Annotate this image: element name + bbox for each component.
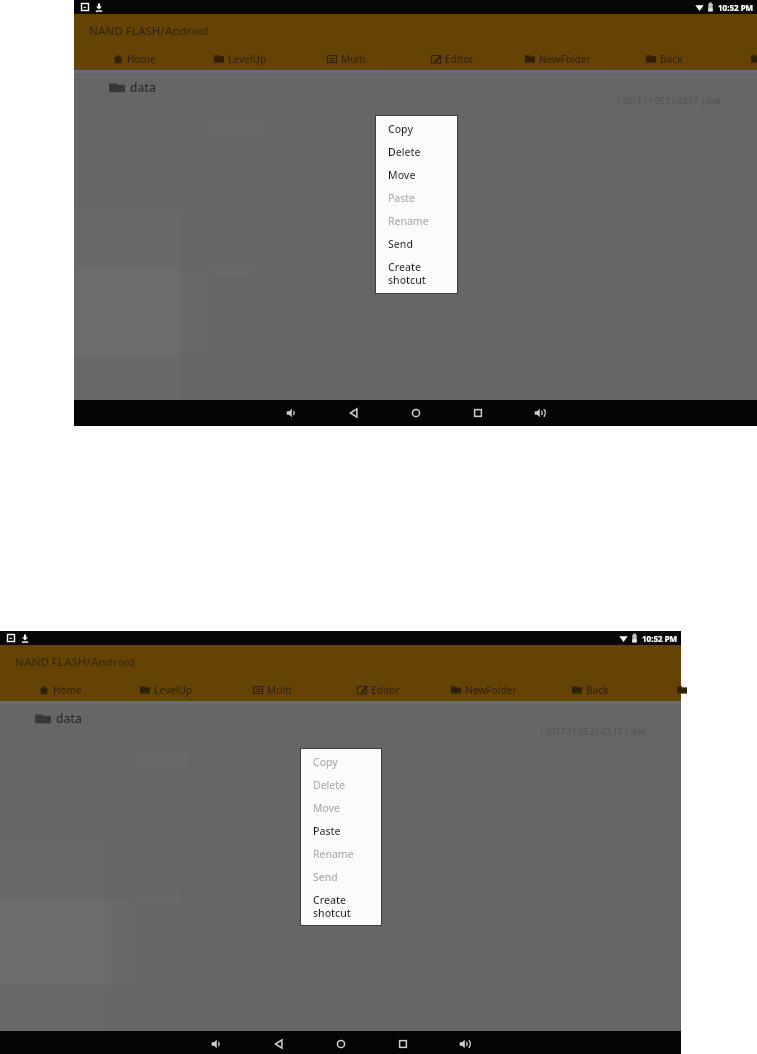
button[interactable]: Editor: [325, 678, 431, 701]
button[interactable]: Back: [611, 47, 717, 70]
staticText: NewFolder: [539, 52, 591, 66]
button[interactable]: Home: [404, 401, 428, 425]
button[interactable]: Volume down: [280, 401, 304, 425]
button[interactable]: Delete: [300, 773, 382, 796]
button[interactable]: Recents: [391, 1032, 415, 1054]
button[interactable]: More: [643, 678, 681, 701]
staticText: Paste: [388, 191, 415, 205]
staticText: Multi: [267, 683, 292, 697]
button[interactable]: NewFolder: [505, 47, 611, 70]
staticText: Send: [388, 237, 413, 251]
staticText: Move: [388, 168, 416, 182]
staticText: Rename: [313, 847, 354, 861]
button[interactable]: Home: [81, 47, 187, 70]
staticText: | 2017-11-05 21:43:17 | drw: [540, 726, 646, 737]
staticText: Delete: [313, 778, 345, 792]
button[interactable]: Send: [300, 865, 382, 888]
button[interactable]: Copy: [375, 117, 458, 140]
staticText: LevelUp: [228, 52, 267, 66]
staticText: Multi: [341, 52, 366, 66]
staticText: Editor: [445, 52, 474, 66]
button[interactable]: Multi: [293, 47, 399, 70]
staticText: Create shotcut: [313, 893, 351, 920]
button[interactable]: Create shotcut: [375, 255, 458, 289]
staticText: NAND FLASH/Android: [89, 23, 209, 39]
button[interactable]: Volume down: [205, 1032, 229, 1054]
staticText: Paste: [313, 824, 341, 838]
staticText: Rename: [388, 214, 429, 228]
button[interactable]: Create shotcut: [300, 888, 382, 922]
staticText: Create shotcut: [388, 260, 426, 287]
staticText: data: [130, 79, 156, 95]
staticText: Back: [660, 52, 683, 66]
button[interactable]: NewFolder: [431, 678, 537, 701]
button[interactable]: Rename: [300, 842, 382, 865]
button[interactable]: Multi: [219, 678, 325, 701]
button[interactable]: Back: [267, 1032, 291, 1054]
staticText: LevelUp: [154, 683, 193, 697]
staticText: data: [56, 710, 82, 726]
staticText: 10:52 PM: [718, 2, 754, 13]
button[interactable]: Volume up: [453, 1032, 477, 1054]
button[interactable]: data: [74, 73, 757, 101]
button[interactable]: Back: [537, 678, 643, 701]
button[interactable]: Recents: [466, 401, 490, 425]
staticText: Editor: [371, 683, 400, 697]
staticText: Home: [53, 683, 82, 697]
button[interactable]: data: [0, 704, 681, 732]
staticText: Home: [127, 52, 156, 66]
button[interactable]: Volume up: [528, 401, 552, 425]
staticText: Copy: [388, 122, 413, 136]
button[interactable]: Copy: [300, 750, 382, 773]
button[interactable]: LevelUp: [113, 678, 219, 701]
button[interactable]: Paste: [375, 186, 458, 209]
staticText: Move: [313, 801, 340, 815]
staticText: Back: [586, 683, 609, 697]
button[interactable]: Home: [329, 1032, 353, 1054]
button[interactable]: Move: [300, 796, 382, 819]
staticText: NAND FLASH/Android: [15, 654, 135, 670]
staticText: Delete: [388, 145, 421, 159]
staticText: | 2017-11-05 21:43:17 | drw: [616, 95, 722, 106]
button[interactable]: Back: [342, 401, 366, 425]
button[interactable]: Home: [7, 678, 113, 701]
staticText: Send: [313, 870, 338, 884]
button[interactable]: Move: [375, 163, 458, 186]
staticText: Copy: [313, 755, 338, 769]
button[interactable]: Send: [375, 232, 458, 255]
staticText: NewFolder: [465, 683, 517, 697]
button[interactable]: LevelUp: [187, 47, 293, 70]
button[interactable]: Editor: [399, 47, 505, 70]
button[interactable]: Rename: [375, 209, 458, 232]
button[interactable]: Paste: [300, 819, 382, 842]
button[interactable]: More: [717, 47, 757, 70]
button[interactable]: Delete: [375, 140, 458, 163]
staticText: 10:52 PM: [642, 633, 678, 644]
